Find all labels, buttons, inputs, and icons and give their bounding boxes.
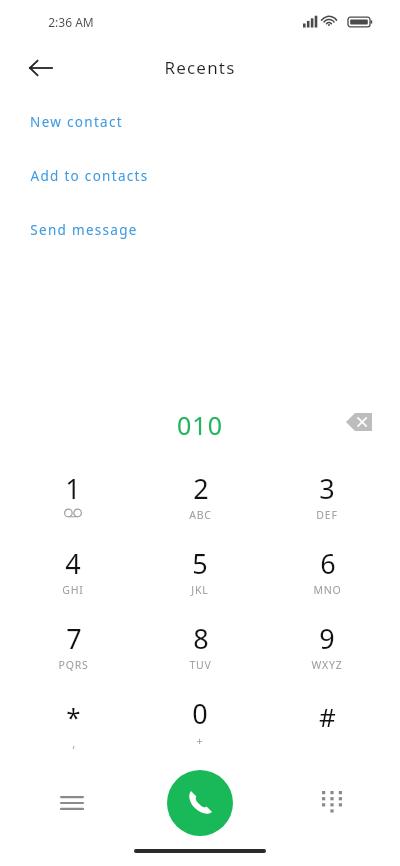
button[interactable]: 2 (144, 460, 256, 535)
staticText: Send message (30, 221, 138, 239)
button[interactable]: 7 (17, 610, 129, 685)
button[interactable]: New contact (0, 108, 400, 136)
staticText: PQRS (58, 658, 89, 672)
staticText: 3 (319, 470, 335, 507)
button[interactable]: Add to contacts (0, 162, 400, 190)
staticText: Recents (164, 56, 236, 79)
staticText: , (72, 736, 76, 751)
staticText: ABC (189, 508, 212, 522)
button[interactable]: 9 (271, 610, 383, 685)
staticText: MNO (313, 583, 342, 597)
button[interactable]: 4 (17, 535, 129, 610)
staticText: 2:36 AM (48, 14, 94, 30)
button[interactable]: # (271, 685, 383, 760)
button[interactable]: 6 (271, 535, 383, 610)
button[interactable]: * (17, 685, 129, 760)
staticText: TUV (189, 658, 212, 672)
staticText: Add to contacts (30, 167, 149, 185)
button[interactable]: 8 (144, 610, 256, 685)
button[interactable]: 3 (271, 460, 383, 535)
staticText: 6 (320, 545, 336, 582)
button[interactable]: Back (22, 50, 60, 86)
staticText: 9 (319, 620, 335, 657)
button[interactable]: 0 (144, 685, 256, 760)
button[interactable]: 5 (144, 535, 256, 610)
staticText: # (319, 699, 336, 734)
staticText: 7 (66, 620, 82, 657)
staticText: 2 (193, 470, 209, 507)
staticText: JKL (191, 583, 209, 597)
staticText: 1 (65, 470, 81, 507)
staticText: New contact (30, 113, 123, 131)
button[interactable]: Dialpad (307, 778, 357, 828)
staticText: 0 (192, 695, 208, 732)
staticText: GHI (62, 583, 84, 597)
staticText: 5 (192, 545, 208, 582)
button[interactable]: Backspace (337, 402, 381, 442)
staticText: * (66, 699, 81, 734)
staticText: 8 (193, 620, 209, 657)
button[interactable]: Menu (47, 778, 97, 828)
button[interactable]: Send message (0, 216, 400, 244)
staticText: 4 (65, 545, 81, 582)
staticText: 010 (177, 408, 223, 442)
button[interactable]: 1 (17, 460, 129, 535)
button[interactable]: Call (167, 770, 233, 836)
staticText: + (196, 733, 204, 748)
staticText: DEF (316, 508, 338, 522)
staticText: WXYZ (311, 658, 343, 672)
